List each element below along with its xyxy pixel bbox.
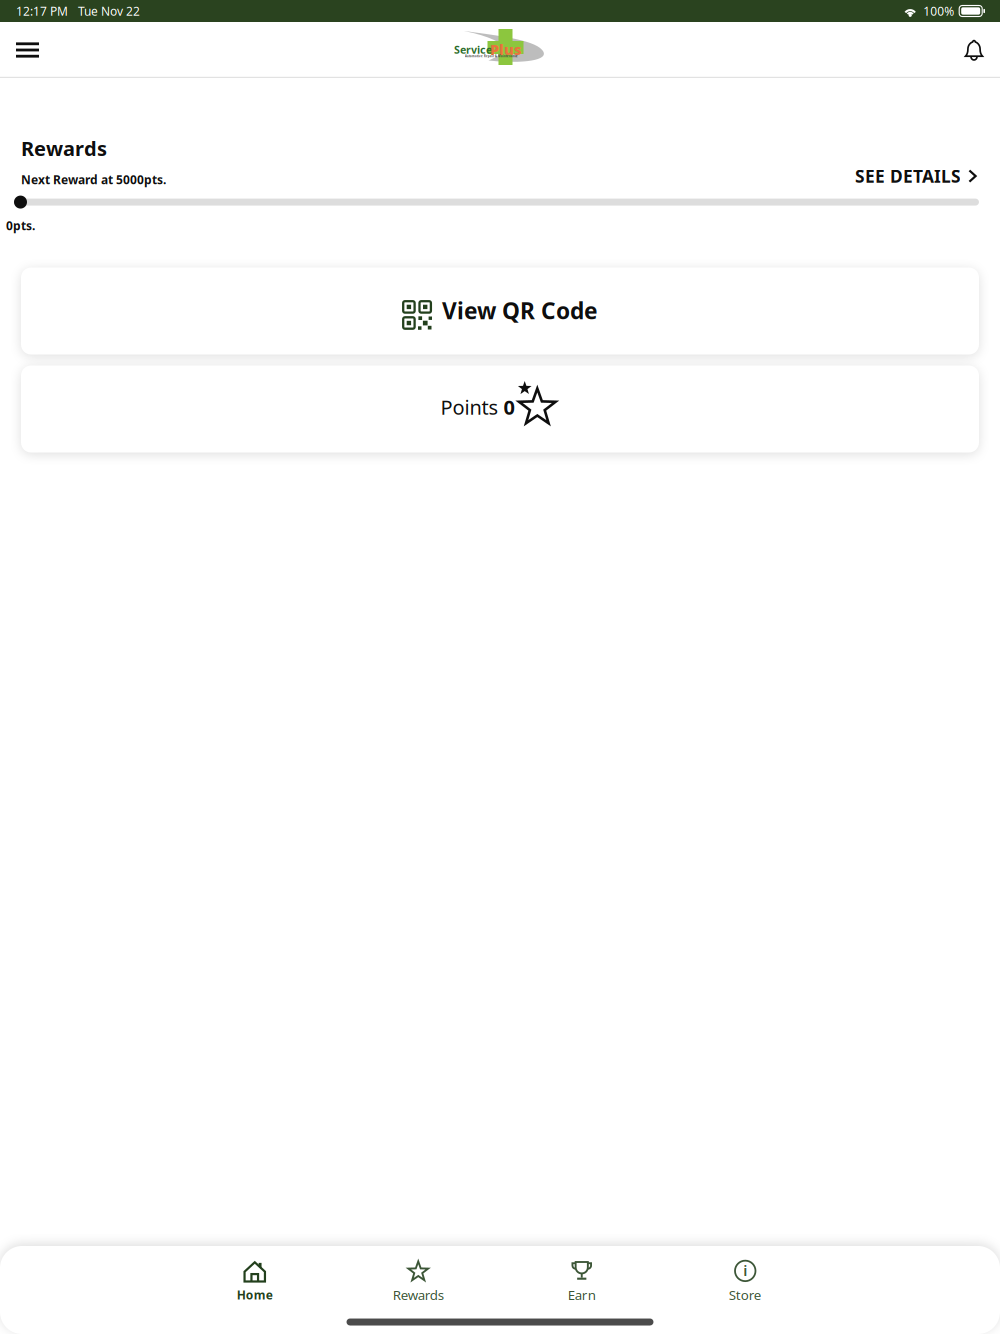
staticText: Automotive Repair & Maintenance [465,54,518,58]
staticText: Rewards [21,135,107,162]
staticText: Points [440,394,503,420]
staticText: i [743,1261,747,1280]
staticText: 0pts. [6,218,35,233]
button[interactable]: View QR Code [21,267,979,354]
button[interactable]: SEE DETAILS [855,165,977,188]
staticText: 100% [923,3,954,19]
staticText: Plus [490,39,522,59]
staticText: SEE DETAILS [855,165,961,188]
staticText: Next Reward at 5000pts. [21,172,166,187]
staticText: 12:17 PM [16,3,68,19]
button[interactable]: i [663,1263,827,1299]
staticText: Store [729,1286,762,1304]
button[interactable]: Rewards [336,1263,500,1299]
staticText: 0 [503,394,514,420]
staticText: Tue Nov 22 [78,3,140,19]
staticText: Service [454,42,492,57]
staticText: Earn [568,1286,596,1304]
button[interactable]: Home [173,1263,336,1299]
staticText: Rewards [393,1286,444,1304]
staticText: Home [237,1287,273,1303]
button[interactable]: Menu [16,22,71,78]
staticText: View QR Code [442,295,598,326]
button[interactable]: Earn [500,1263,663,1299]
button[interactable]: Points [21,365,979,452]
button[interactable]: Notifications [931,22,986,78]
